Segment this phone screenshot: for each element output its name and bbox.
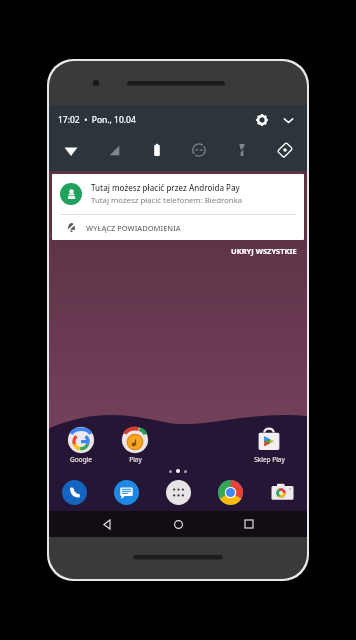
staticText: WYŁĄCZ POWIADOMIENIA [86, 223, 181, 233]
button[interactable]: Do not disturb [185, 136, 213, 164]
button[interactable]: UKRYJ WSZYSTKIE [49, 246, 307, 256]
staticText: Google [70, 455, 92, 464]
staticText: Tutaj możesz płacić telefonem: Biedronka [91, 195, 243, 206]
staticText: 17:02 • Pon., 10.04 [58, 114, 136, 126]
staticText: Tutaj możesz płacić przez Androida Pay [91, 182, 240, 193]
button[interactable]: Tutaj możesz płacić przez Androida Pay [52, 174, 304, 214]
button[interactable]: Mobile data [100, 136, 128, 164]
button[interactable]: Chrome [215, 477, 245, 507]
button[interactable]: All apps [163, 477, 193, 507]
button[interactable]: WYŁĄCZ POWIADOMIENIA [52, 215, 304, 240]
button[interactable]: Back [94, 511, 120, 537]
button[interactable]: Flashlight [228, 136, 256, 164]
button[interactable]: Sklep Play [249, 427, 289, 464]
staticText: UKRYJ WSZYSTKIE [231, 246, 297, 256]
button[interactable]: Home [165, 511, 191, 537]
button[interactable]: Camera [267, 477, 297, 507]
button[interactable]: Phone [59, 477, 89, 507]
button[interactable]: Battery [143, 136, 171, 164]
button[interactable]: Settings [252, 110, 272, 130]
button[interactable]: Recent apps [236, 511, 262, 537]
button[interactable]: Wi-Fi [57, 136, 85, 164]
button[interactable]: Collapse [278, 110, 298, 130]
staticText: Sklep Play [254, 455, 285, 464]
button[interactable]: Auto-rotate [271, 136, 299, 164]
button[interactable]: Play [115, 427, 155, 464]
staticText: Play [129, 455, 142, 464]
button[interactable]: Messages [111, 477, 141, 507]
button[interactable]: Google [61, 427, 101, 464]
